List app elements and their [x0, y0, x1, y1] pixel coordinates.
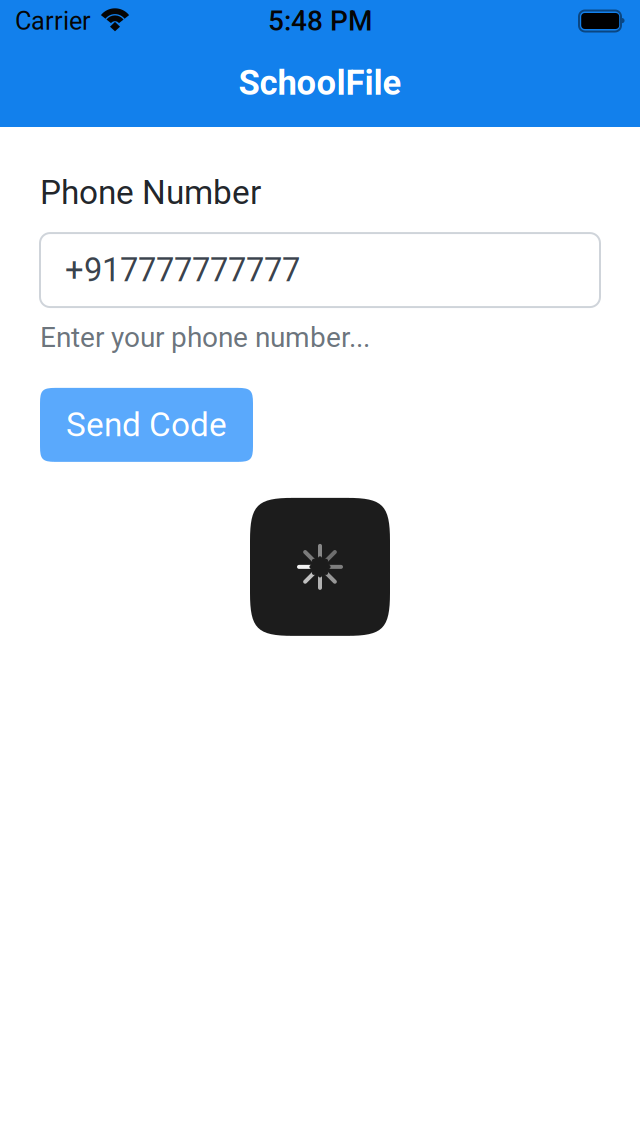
staticText: SchoolFile [238, 63, 401, 103]
staticText: +917777777777 [65, 251, 300, 289]
staticText: Phone Number [40, 173, 261, 212]
staticText: Enter your phone number... [40, 321, 370, 354]
button[interactable]: Send Code [40, 388, 253, 462]
staticText: 5:48 PM [268, 5, 372, 37]
staticText: Send Code [66, 405, 227, 444]
staticText: Carrier [15, 6, 91, 36]
